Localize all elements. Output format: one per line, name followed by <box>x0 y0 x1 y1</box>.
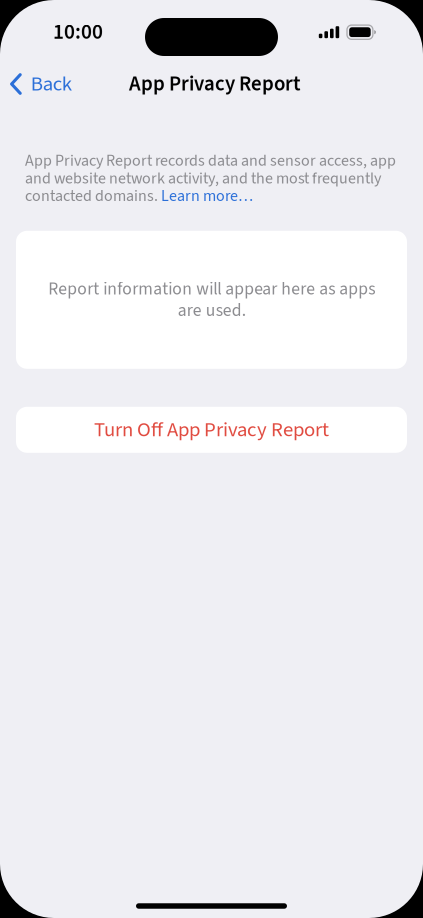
staticText: Back <box>31 69 72 99</box>
staticText: App Privacy Report records data and sens… <box>25 149 396 172</box>
staticText: contacted domains. <box>25 185 161 207</box>
staticText: Turn Off App Privacy Report <box>94 415 329 444</box>
staticText: and website network activity, and the mo… <box>25 167 381 190</box>
staticText: Report information will appear here as a… <box>48 278 375 321</box>
button[interactable]: Back <box>0 62 82 106</box>
staticText: Learn more… <box>161 185 253 207</box>
staticText: App Privacy Report <box>129 69 301 99</box>
staticText: 10:00 <box>53 17 103 47</box>
button[interactable]: Learn more… <box>161 185 253 207</box>
button[interactable]: Turn Off App Privacy Report <box>0 407 423 453</box>
